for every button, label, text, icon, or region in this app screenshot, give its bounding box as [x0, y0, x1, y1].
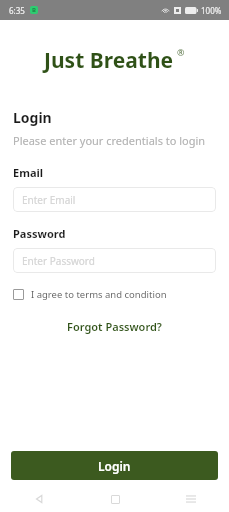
staticText: Just Breathe	[44, 46, 174, 75]
button[interactable]: Back	[0, 486, 77, 512]
staticText: 100%	[201, 5, 222, 16]
staticText: I agree to terms and condition	[31, 288, 167, 301]
button[interactable]: Enter Email	[13, 187, 216, 212]
button[interactable]: Home	[77, 486, 153, 512]
button[interactable]: I agree to terms and condition	[13, 286, 167, 303]
staticText: ®	[177, 46, 185, 58]
staticText: Enter Password	[22, 254, 95, 268]
staticText: Please enter your credentials to login	[13, 133, 206, 148]
staticText: 6:35	[9, 5, 25, 16]
staticText: B	[32, 6, 36, 14]
staticText: Login	[13, 108, 52, 127]
button[interactable]: Enter Password	[13, 248, 216, 273]
staticText: Forgot Password?	[67, 319, 162, 334]
staticText: Email	[13, 165, 44, 180]
staticText: Enter Email	[22, 193, 76, 207]
button[interactable]: Forgot Password?	[13, 319, 216, 334]
button[interactable]: Login	[11, 451, 218, 480]
staticText: Login	[98, 458, 131, 474]
staticText: Password	[13, 226, 66, 241]
button[interactable]: Recent apps	[153, 486, 229, 512]
